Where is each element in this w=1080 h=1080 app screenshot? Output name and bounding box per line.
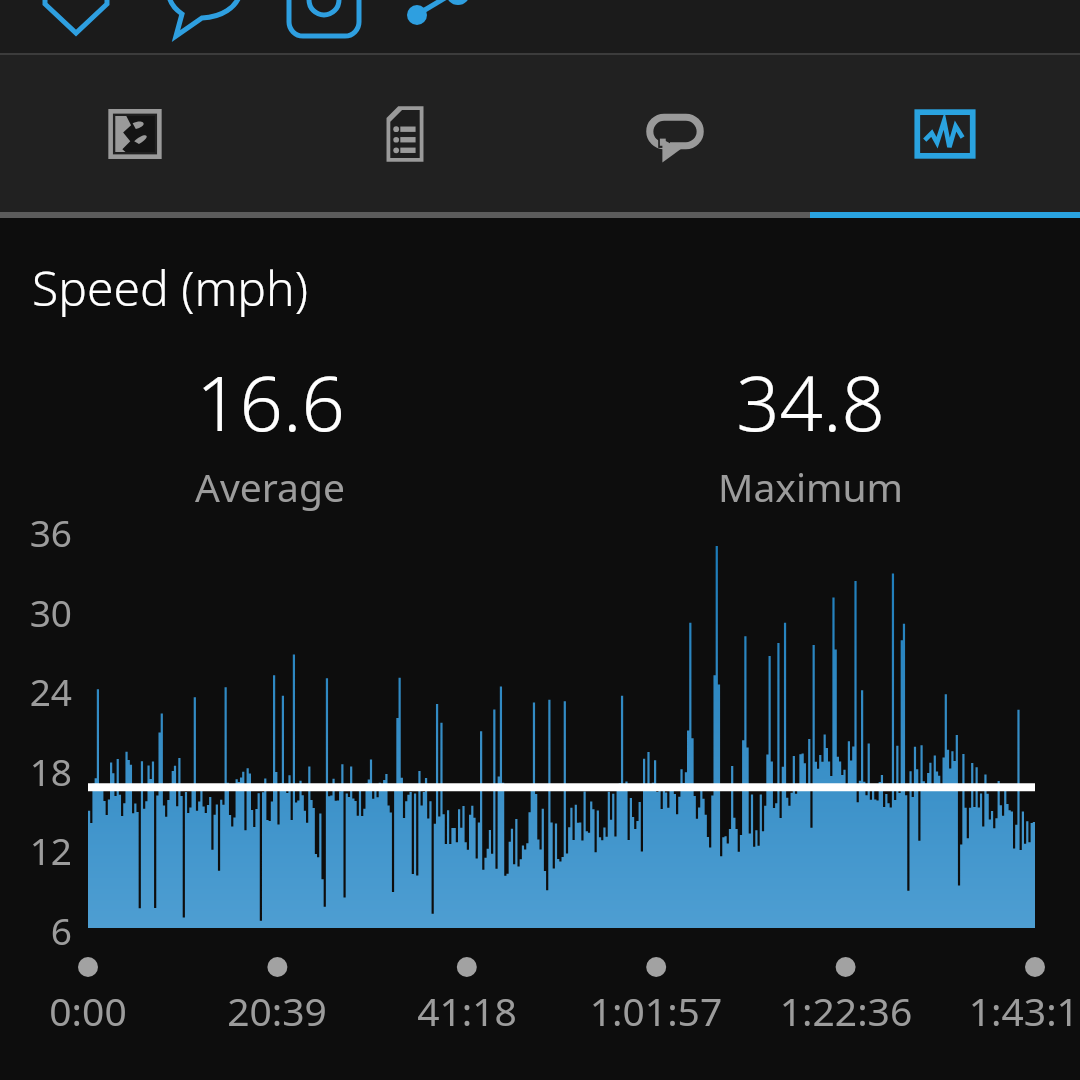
- staticText: 0:00: [0, 984, 238, 1037]
- staticText: Maximum: [718, 460, 903, 513]
- staticText: 6: [0, 905, 72, 955]
- staticText: 34.8: [736, 350, 885, 454]
- staticText: 1:01:57: [506, 984, 806, 1037]
- staticText: 36: [0, 507, 72, 557]
- staticText: 12: [0, 825, 72, 875]
- staticText: 20:39: [127, 984, 427, 1037]
- staticText: 41:18: [317, 984, 617, 1037]
- button[interactable]: Charts: [810, 55, 1080, 212]
- staticText: Average: [195, 460, 345, 513]
- staticText: 24: [0, 666, 72, 716]
- button[interactable]: Summary: [270, 55, 540, 212]
- staticText: 1:22:36: [696, 984, 996, 1037]
- button[interactable]: Laps: [540, 55, 810, 212]
- staticText: Speed (mph): [32, 255, 308, 320]
- staticText: 18: [0, 746, 72, 796]
- staticText: 16.6: [196, 350, 345, 454]
- button[interactable]: Map: [0, 55, 270, 212]
- staticText: 1:43:15: [885, 984, 1080, 1037]
- staticText: 30: [0, 587, 72, 637]
